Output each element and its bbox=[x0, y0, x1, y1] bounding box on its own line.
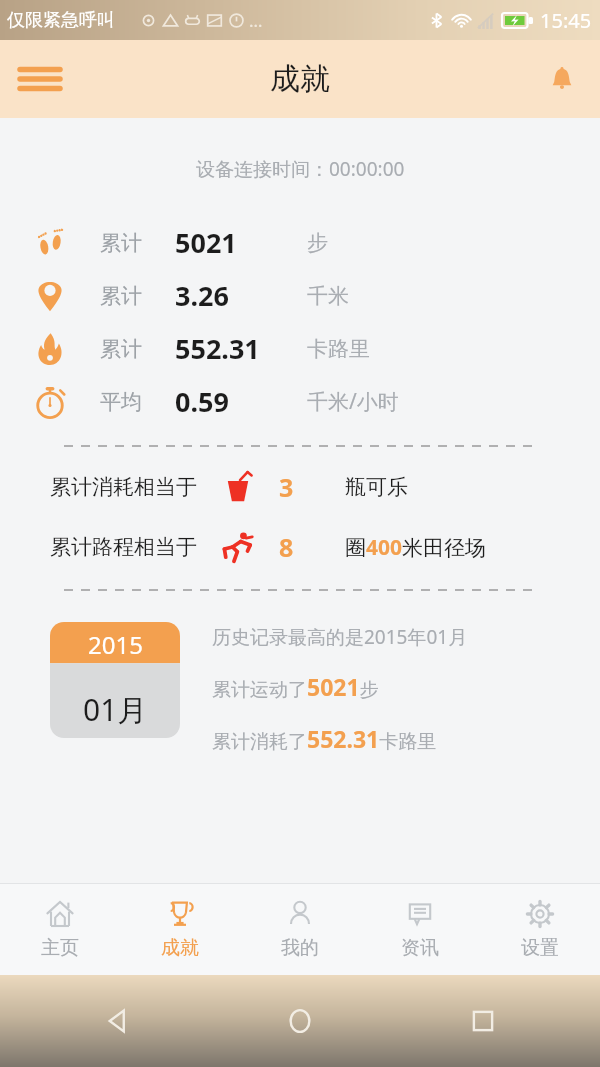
staticText: 千米 bbox=[307, 283, 349, 309]
button[interactable]: 累计路程相当于 bbox=[50, 530, 600, 564]
staticText: 累计 bbox=[100, 230, 142, 256]
staticText: 累计 bbox=[100, 336, 142, 362]
button[interactable]: 累计消耗相当于 bbox=[50, 470, 600, 504]
staticText: 15:45 bbox=[540, 7, 592, 34]
button[interactable]: Menu bbox=[14, 53, 66, 105]
staticText: 3 bbox=[279, 470, 294, 504]
staticText: 0.59 bbox=[175, 383, 229, 420]
button[interactable]: 主页 bbox=[0, 884, 120, 975]
staticText: 8 bbox=[279, 530, 294, 564]
button[interactable]: 累计 bbox=[0, 322, 600, 375]
staticText: 5021 bbox=[175, 224, 237, 261]
staticText: 设备连接时间：00:00:00 bbox=[196, 156, 405, 182]
staticText: 卡路里 bbox=[307, 336, 370, 362]
staticText: … bbox=[249, 9, 263, 32]
staticText: 累计 bbox=[100, 283, 142, 309]
button[interactable]: 累计 bbox=[0, 216, 600, 269]
staticText: 累计消耗了552.31卡路里 bbox=[212, 723, 437, 754]
staticText: 552.31 bbox=[175, 330, 260, 367]
button[interactable]: Back bbox=[90, 994, 144, 1048]
staticText: 累计消耗相当于 bbox=[50, 474, 197, 500]
staticText: 资讯 bbox=[401, 936, 439, 960]
button[interactable]: Notifications bbox=[538, 55, 586, 103]
staticText: 累计运动了5021步 bbox=[212, 671, 379, 702]
button[interactable]: 资讯 bbox=[360, 884, 480, 975]
button[interactable]: Recents bbox=[456, 994, 510, 1048]
button[interactable]: 累计 bbox=[0, 269, 600, 322]
staticText: 主页 bbox=[41, 936, 79, 960]
staticText: 历史记录最高的是2015年01月 bbox=[212, 624, 468, 650]
staticText: 圈400米田径场 bbox=[345, 533, 487, 562]
button[interactable]: 我的 bbox=[240, 884, 360, 975]
staticText: 千米/小时 bbox=[307, 387, 399, 416]
staticText: 平均 bbox=[100, 389, 142, 415]
staticText: 成就 bbox=[161, 936, 199, 960]
staticText: 瓶可乐 bbox=[345, 474, 408, 500]
button[interactable]: Home bbox=[273, 994, 327, 1048]
staticText: 01月 bbox=[83, 689, 148, 730]
button[interactable]: 成就 bbox=[120, 884, 240, 975]
staticText: 步 bbox=[307, 230, 328, 256]
staticText: 设置 bbox=[521, 936, 559, 960]
staticText: 累计路程相当于 bbox=[50, 534, 197, 560]
staticText: 2015 bbox=[88, 628, 143, 661]
button[interactable]: 平均 bbox=[0, 375, 600, 428]
staticText: 成就 bbox=[270, 60, 330, 98]
button[interactable]: 设置 bbox=[480, 884, 600, 975]
staticText: 3.26 bbox=[175, 277, 229, 314]
staticText: 我的 bbox=[281, 936, 319, 960]
staticText: 仅限紧急呼叫 bbox=[7, 9, 115, 32]
